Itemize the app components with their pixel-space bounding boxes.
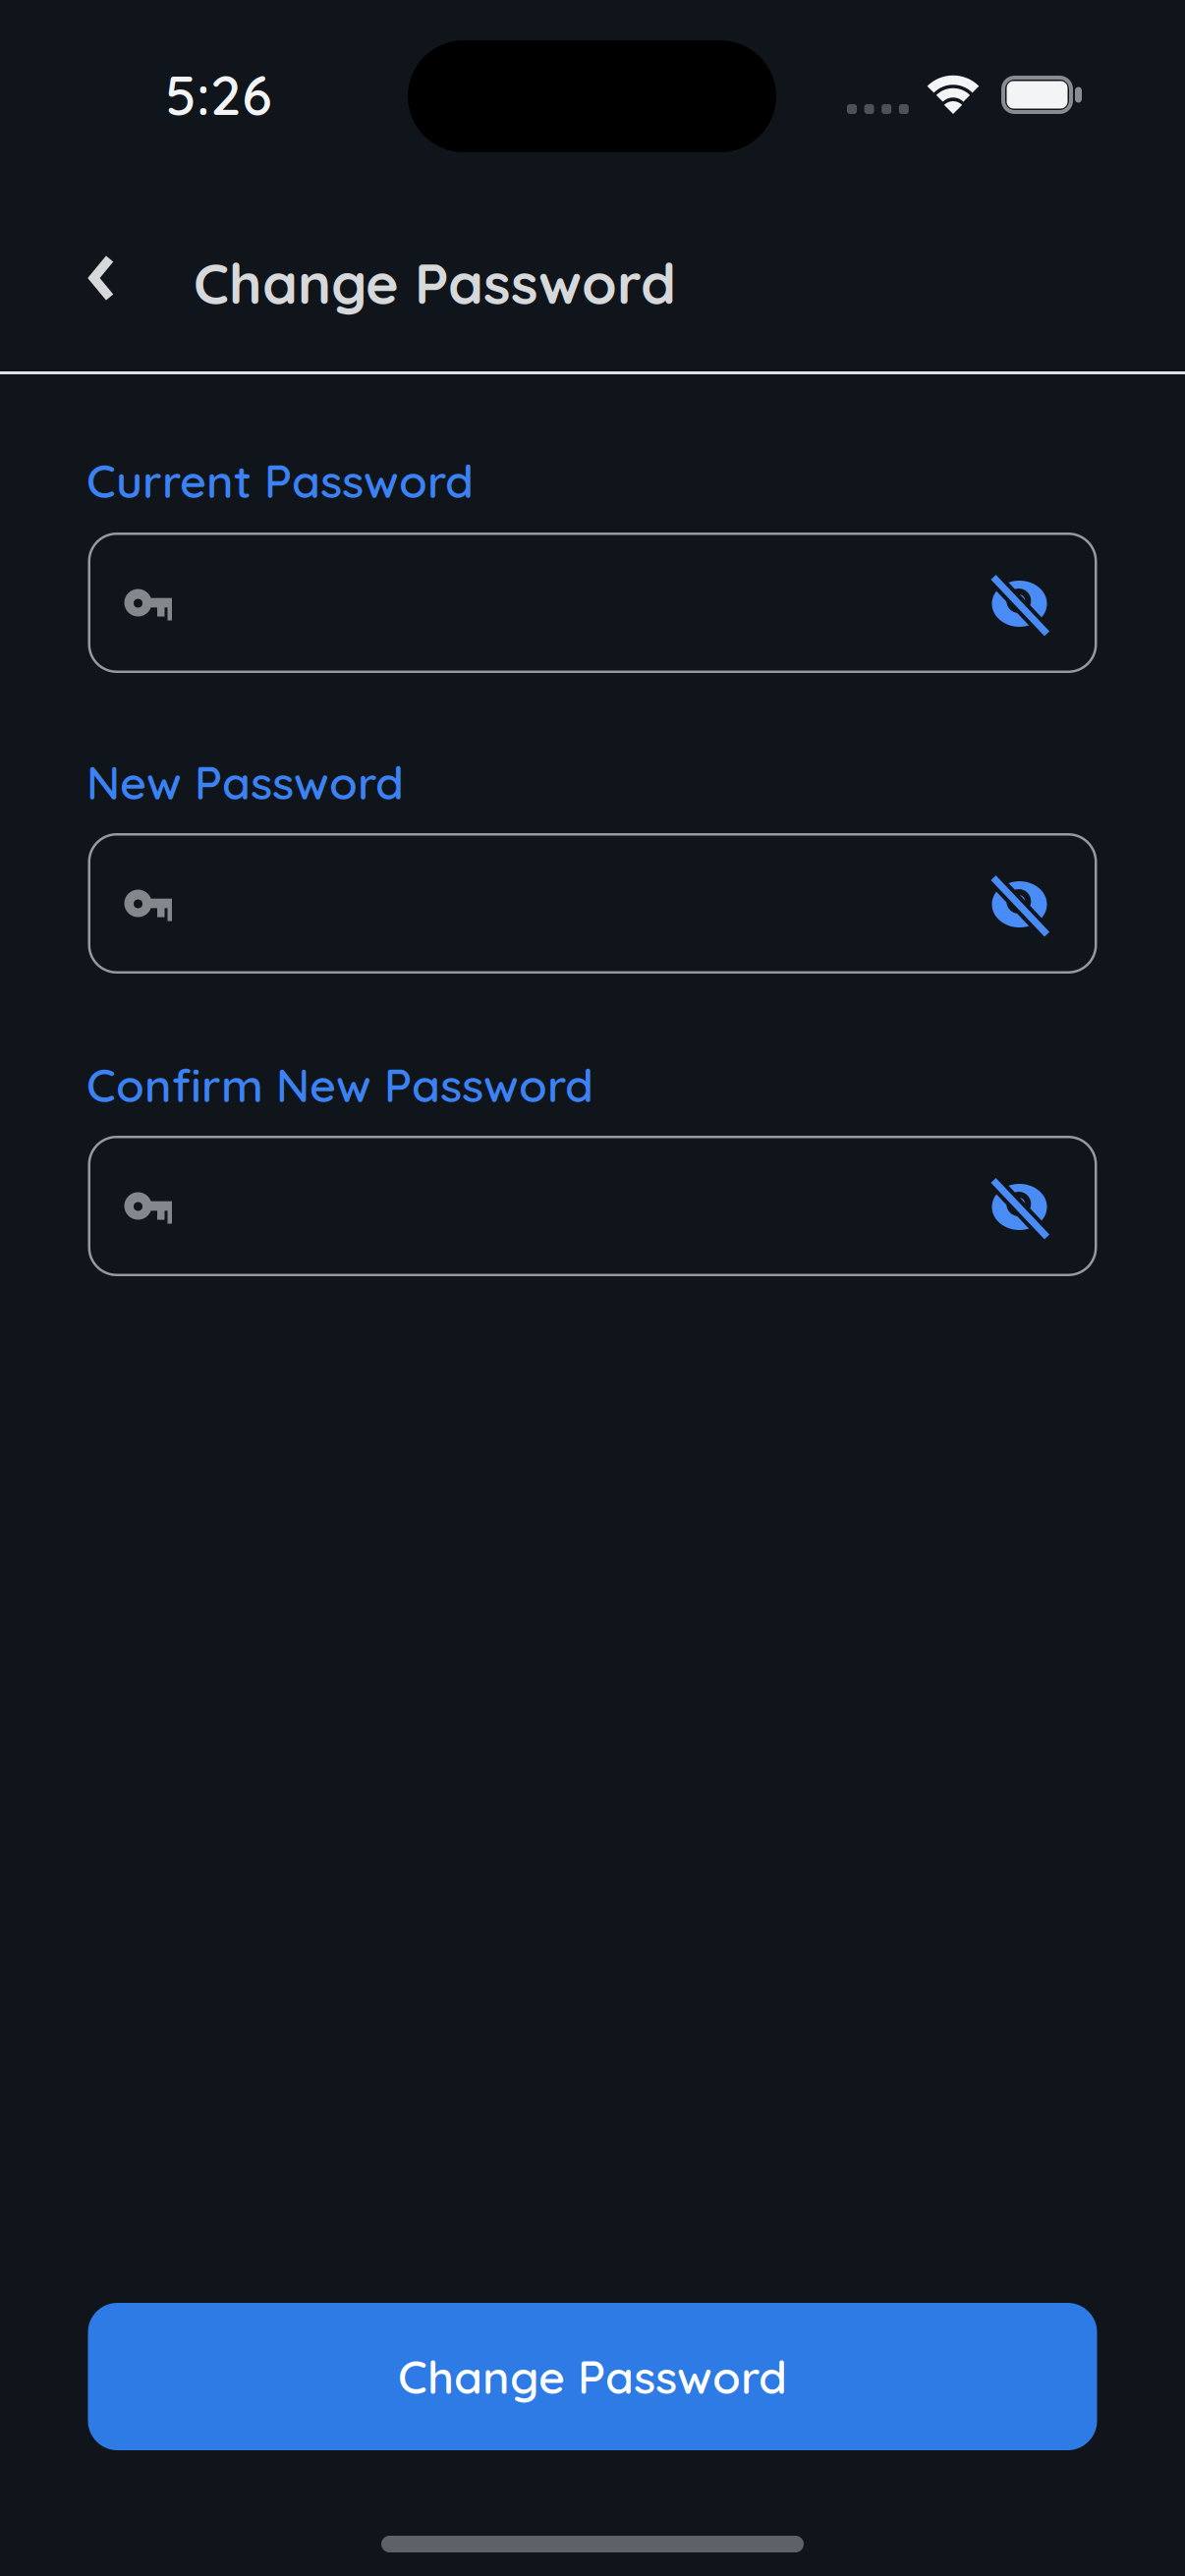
staticText: Current Password: [86, 452, 474, 509]
staticText: Change Password: [398, 2348, 787, 2405]
button[interactable]: Show password: [974, 856, 1065, 951]
button[interactable]: Back: [63, 239, 141, 317]
staticText: Confirm New Password: [86, 1056, 593, 1113]
staticText: Change Password: [194, 248, 676, 318]
button[interactable]: Change Password: [88, 2303, 1097, 2450]
staticText: 5:26: [165, 60, 272, 129]
staticText: New Password: [86, 754, 404, 811]
button[interactable]: Show password: [974, 556, 1065, 650]
button[interactable]: Show password: [974, 1159, 1065, 1253]
